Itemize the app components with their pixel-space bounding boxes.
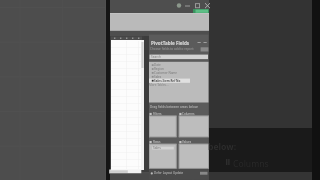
button[interactable]: PivotTable Fields pane [0,0,320,180]
staticText: Region [154,67,164,71]
staticText: Columns [233,158,269,170]
staticText: Sales Item Ref No [154,79,181,83]
staticText: Filters [153,112,162,116]
staticText: Defer Layout Update [154,171,184,175]
staticText: Values [182,140,192,144]
button[interactable]: Defer Layout Update [154,171,184,175]
staticText: PivotTable Fields [151,40,190,46]
staticText: Date [154,63,161,67]
button[interactable]: PivotTable Fields [151,40,190,46]
staticText: Search [151,55,161,59]
staticText: Columns [182,112,195,116]
staticText: Sales [153,146,161,150]
staticText: below: [208,141,237,153]
staticText: Customer Name [154,71,178,75]
staticText: Drag fields between areas below: [150,105,199,109]
staticText: Sales [154,75,162,79]
staticText: Choose fields to add to report: [150,47,195,51]
staticText: Rows [153,140,161,144]
staticText: More Tables... [149,83,169,87]
